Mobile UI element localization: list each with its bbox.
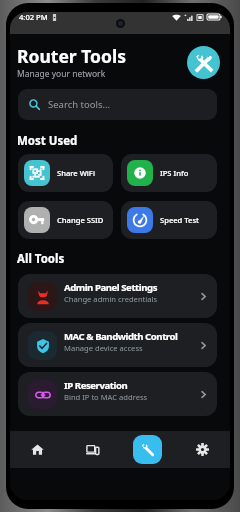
staticText: Admin Panel Settings <box>64 281 158 294</box>
staticText: 4:02 PM <box>19 12 48 22</box>
button[interactable]: MAC & Bandwidth Control <box>18 323 217 367</box>
staticText: IPS Info <box>160 168 189 178</box>
button[interactable]: IP Reservation <box>18 372 217 416</box>
button[interactable]: Devices <box>78 435 107 464</box>
staticText: IP Reservation <box>64 379 128 392</box>
button[interactable]: Settings <box>188 435 217 464</box>
staticText: Search tools... <box>48 98 111 111</box>
staticText: All Tools <box>17 251 65 267</box>
staticText: Speed Test <box>160 215 199 225</box>
button[interactable]: IPS Info <box>121 154 217 192</box>
staticText: Change admin credentials <box>64 294 158 304</box>
staticText: Most Used <box>17 133 78 149</box>
staticText: Router Tools <box>17 44 126 68</box>
button[interactable]: Tools <box>187 46 220 79</box>
button[interactable]: Change SSID <box>18 201 113 239</box>
staticText: Manage your network <box>17 68 106 80</box>
button[interactable]: Search tools... <box>18 89 217 120</box>
button[interactable]: Speed Test <box>121 201 217 239</box>
staticText: Change SSID <box>57 215 104 225</box>
staticText: Bind IP to MAC address <box>64 392 148 402</box>
button[interactable]: Share WiFi <box>18 154 113 192</box>
button[interactable]: Home <box>23 435 52 464</box>
staticText: Manage device access <box>64 343 143 353</box>
button[interactable]: Tools <box>133 435 162 464</box>
button[interactable]: Admin Panel Settings <box>18 274 217 318</box>
staticText: Share WiFi <box>57 168 95 178</box>
staticText: MAC & Bandwidth Control <box>64 330 178 343</box>
